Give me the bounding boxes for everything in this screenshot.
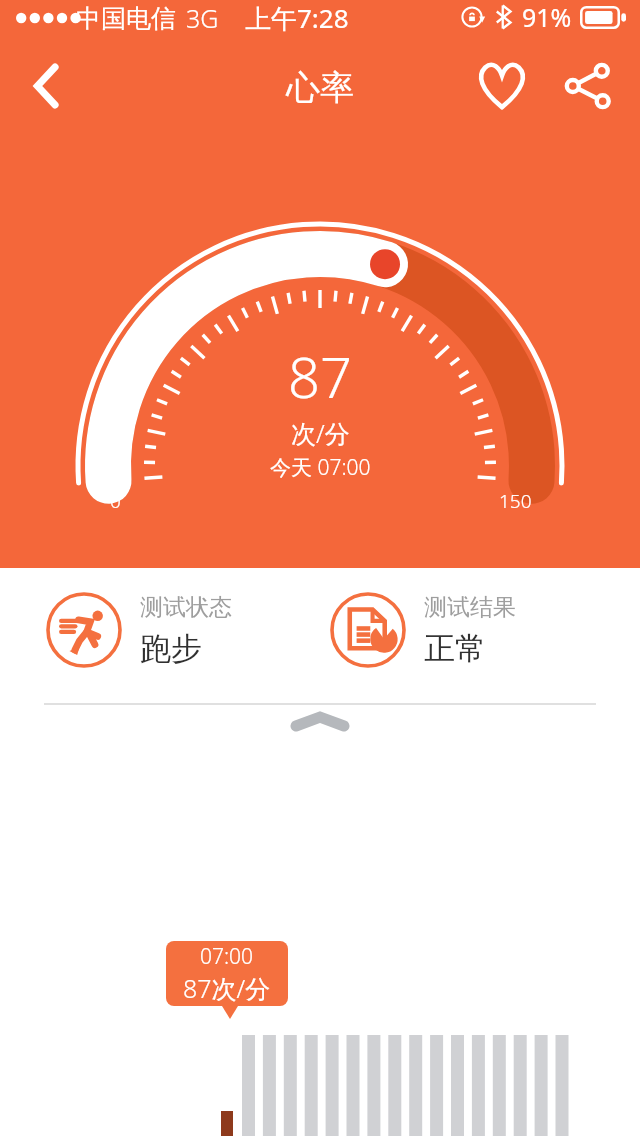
staticText: 心率	[286, 66, 354, 109]
button[interactable]: Test result normal	[330, 592, 640, 668]
staticText: 150	[499, 488, 532, 514]
staticText: 87	[288, 338, 352, 414]
staticText: 中国电信	[76, 3, 176, 34]
button[interactable]: Favorite	[466, 50, 538, 122]
staticText: 测试状态	[140, 593, 232, 622]
staticText: 87次/分	[183, 971, 271, 1005]
staticText: 次/分	[291, 416, 350, 450]
button[interactable]: Collapse chart	[0, 705, 640, 737]
staticText: 跑步	[140, 629, 202, 668]
staticText: 上午7:28	[245, 0, 349, 36]
staticText: 07:00	[200, 942, 254, 971]
button[interactable]: Share	[552, 50, 624, 122]
staticText: 测试结果	[424, 593, 516, 622]
staticText: 0	[110, 488, 121, 514]
button[interactable]: 07:00	[166, 941, 288, 1006]
button[interactable]: Test state running	[46, 592, 320, 668]
staticText: 91%	[522, 0, 572, 34]
staticText: 今天 07:00	[270, 453, 371, 482]
staticText: 3G	[186, 1, 219, 35]
staticText: 正常	[424, 629, 486, 668]
button[interactable]: Back	[10, 50, 82, 122]
